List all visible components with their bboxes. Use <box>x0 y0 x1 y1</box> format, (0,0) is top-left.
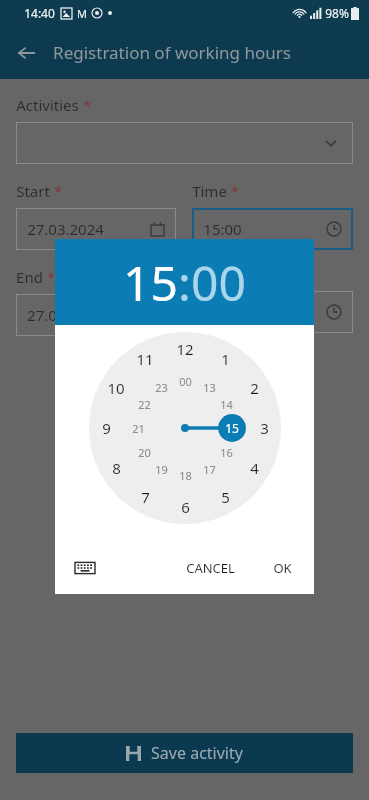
staticText: Start <box>16 181 50 201</box>
staticText: 98% <box>325 5 349 21</box>
staticText: 18 <box>179 468 192 483</box>
staticText: 12 <box>176 339 194 359</box>
button[interactable] <box>16 122 353 164</box>
staticText: * <box>54 182 62 201</box>
button[interactable]: 15:00 <box>192 208 353 250</box>
staticText: : <box>178 250 191 315</box>
staticText: * <box>47 268 55 287</box>
staticText: 1 <box>221 349 230 369</box>
button[interactable]: Back <box>10 37 42 69</box>
staticText: 22 <box>138 397 151 412</box>
staticText: 15:00 <box>203 219 242 239</box>
staticText: Activities <box>16 95 79 115</box>
staticText: OK <box>273 559 292 577</box>
staticText: * <box>83 96 91 115</box>
staticText: 10 <box>107 378 125 398</box>
staticText: End <box>16 267 43 287</box>
staticText: CANCEL <box>186 559 235 577</box>
staticText: 27.0 <box>27 305 57 325</box>
staticText: 00 <box>179 374 192 389</box>
staticText: 00 <box>191 250 246 315</box>
staticText: 9 <box>102 418 111 438</box>
staticText: * <box>231 182 239 201</box>
staticText: 13 <box>203 380 216 395</box>
staticText: 16 <box>220 445 233 460</box>
staticText: 3 <box>260 418 269 438</box>
button[interactable]: 27.0 <box>16 294 176 336</box>
staticText: Registration of working hours <box>53 41 291 64</box>
staticText: 14:40 <box>24 5 55 21</box>
staticText: 15 <box>225 420 239 436</box>
staticText: 7 <box>141 487 150 507</box>
staticText: 15 <box>123 250 178 315</box>
staticText: 3 <box>260 418 269 438</box>
button[interactable]: Save activity <box>16 733 353 773</box>
staticText: 11 <box>136 349 154 369</box>
staticText: 8 <box>112 458 121 478</box>
staticText: 4 <box>250 458 259 478</box>
button[interactable]: CANCEL <box>178 553 243 583</box>
staticText: 5 <box>221 487 230 507</box>
staticText: M <box>77 6 87 21</box>
staticText: 19 <box>155 462 168 477</box>
staticText: 20 <box>138 445 151 460</box>
staticText: Time <box>192 181 227 201</box>
staticText: 2 <box>250 378 259 398</box>
button[interactable]: Switch to text input <box>69 552 101 584</box>
staticText: 17 <box>203 462 216 477</box>
staticText: Save activity <box>151 742 243 764</box>
staticText: 23 <box>155 380 168 395</box>
button[interactable]: 27.03.2024 <box>16 208 176 250</box>
staticText: 27.03.2024 <box>27 219 104 239</box>
staticText: 14 <box>220 397 233 412</box>
staticText: 21 <box>132 421 145 436</box>
button[interactable]: OK <box>265 553 300 583</box>
button[interactable] <box>192 291 353 333</box>
staticText: 6 <box>181 497 190 517</box>
